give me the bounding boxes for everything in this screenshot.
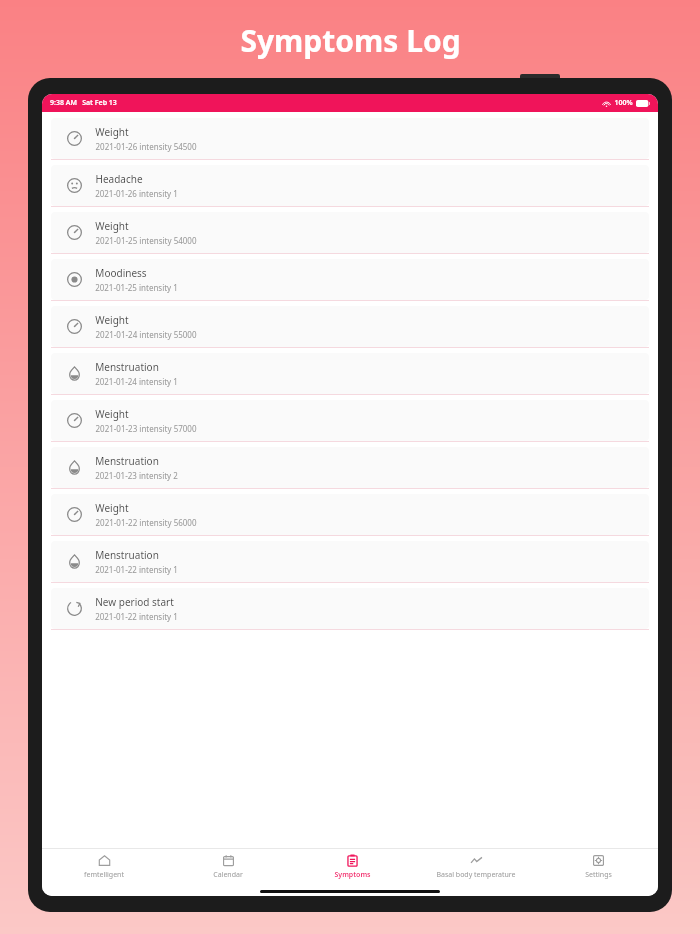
staticText: 9:38 AM <box>50 98 77 108</box>
button[interactable]: Menstruation <box>51 353 649 394</box>
staticText: 2021-01-23 intensity 57000 <box>95 423 197 434</box>
staticText: 100% <box>614 98 633 108</box>
staticText: Weight <box>95 407 129 421</box>
staticText: New period start <box>95 595 174 609</box>
staticText: 2021-01-26 intensity 54500 <box>95 141 197 152</box>
staticText: Symptoms Log <box>240 20 461 61</box>
button[interactable]: Settings <box>538 852 658 880</box>
staticText: 2021-01-25 intensity 1 <box>95 282 178 293</box>
staticText: 2021-01-24 intensity 1 <box>95 376 178 387</box>
button[interactable]: Menstruation <box>51 447 649 488</box>
staticText: Headache <box>95 172 143 186</box>
button[interactable]: Weight <box>51 118 649 159</box>
staticText: 2021-01-26 intensity 1 <box>95 188 178 199</box>
button[interactable]: Weight <box>51 306 649 347</box>
button[interactable]: Weight <box>51 494 649 535</box>
staticText: 2021-01-24 intensity 55000 <box>95 329 197 340</box>
button[interactable]: Calendar <box>166 852 290 880</box>
staticText: Basal body temperature <box>436 870 516 880</box>
button[interactable]: Moodiness <box>51 259 649 300</box>
staticText: Menstruation <box>95 360 159 374</box>
staticText: 2021-01-22 intensity 56000 <box>95 517 197 528</box>
staticText: 2021-01-25 intensity 54000 <box>95 235 197 246</box>
button[interactable]: Symptoms <box>290 852 414 880</box>
staticText: Menstruation <box>95 454 159 468</box>
staticText: Calendar <box>213 870 243 880</box>
staticText: Settings <box>585 870 612 880</box>
button[interactable]: Weight <box>51 212 649 253</box>
button[interactable]: Headache <box>51 165 649 206</box>
staticText: Moodiness <box>95 266 147 280</box>
staticText: 2021-01-22 intensity 1 <box>95 564 178 575</box>
staticText: Symptoms <box>334 870 371 880</box>
staticText: femtelligent <box>84 870 124 880</box>
staticText: 2021-01-23 intensity 2 <box>95 470 178 481</box>
staticText: Weight <box>95 501 129 515</box>
button[interactable]: Basal body temperature <box>414 852 538 880</box>
button[interactable]: Menstruation <box>51 541 649 582</box>
staticText: Weight <box>95 125 129 139</box>
button[interactable]: femtelligent <box>42 852 166 880</box>
staticText: Menstruation <box>95 548 159 562</box>
staticText: Sat Feb 13 <box>82 98 117 108</box>
staticText: 2021-01-22 intensity 1 <box>95 611 178 622</box>
staticText: Weight <box>95 219 129 233</box>
button[interactable]: New period start <box>51 588 649 629</box>
staticText: Weight <box>95 313 129 327</box>
button[interactable]: Weight <box>51 400 649 441</box>
